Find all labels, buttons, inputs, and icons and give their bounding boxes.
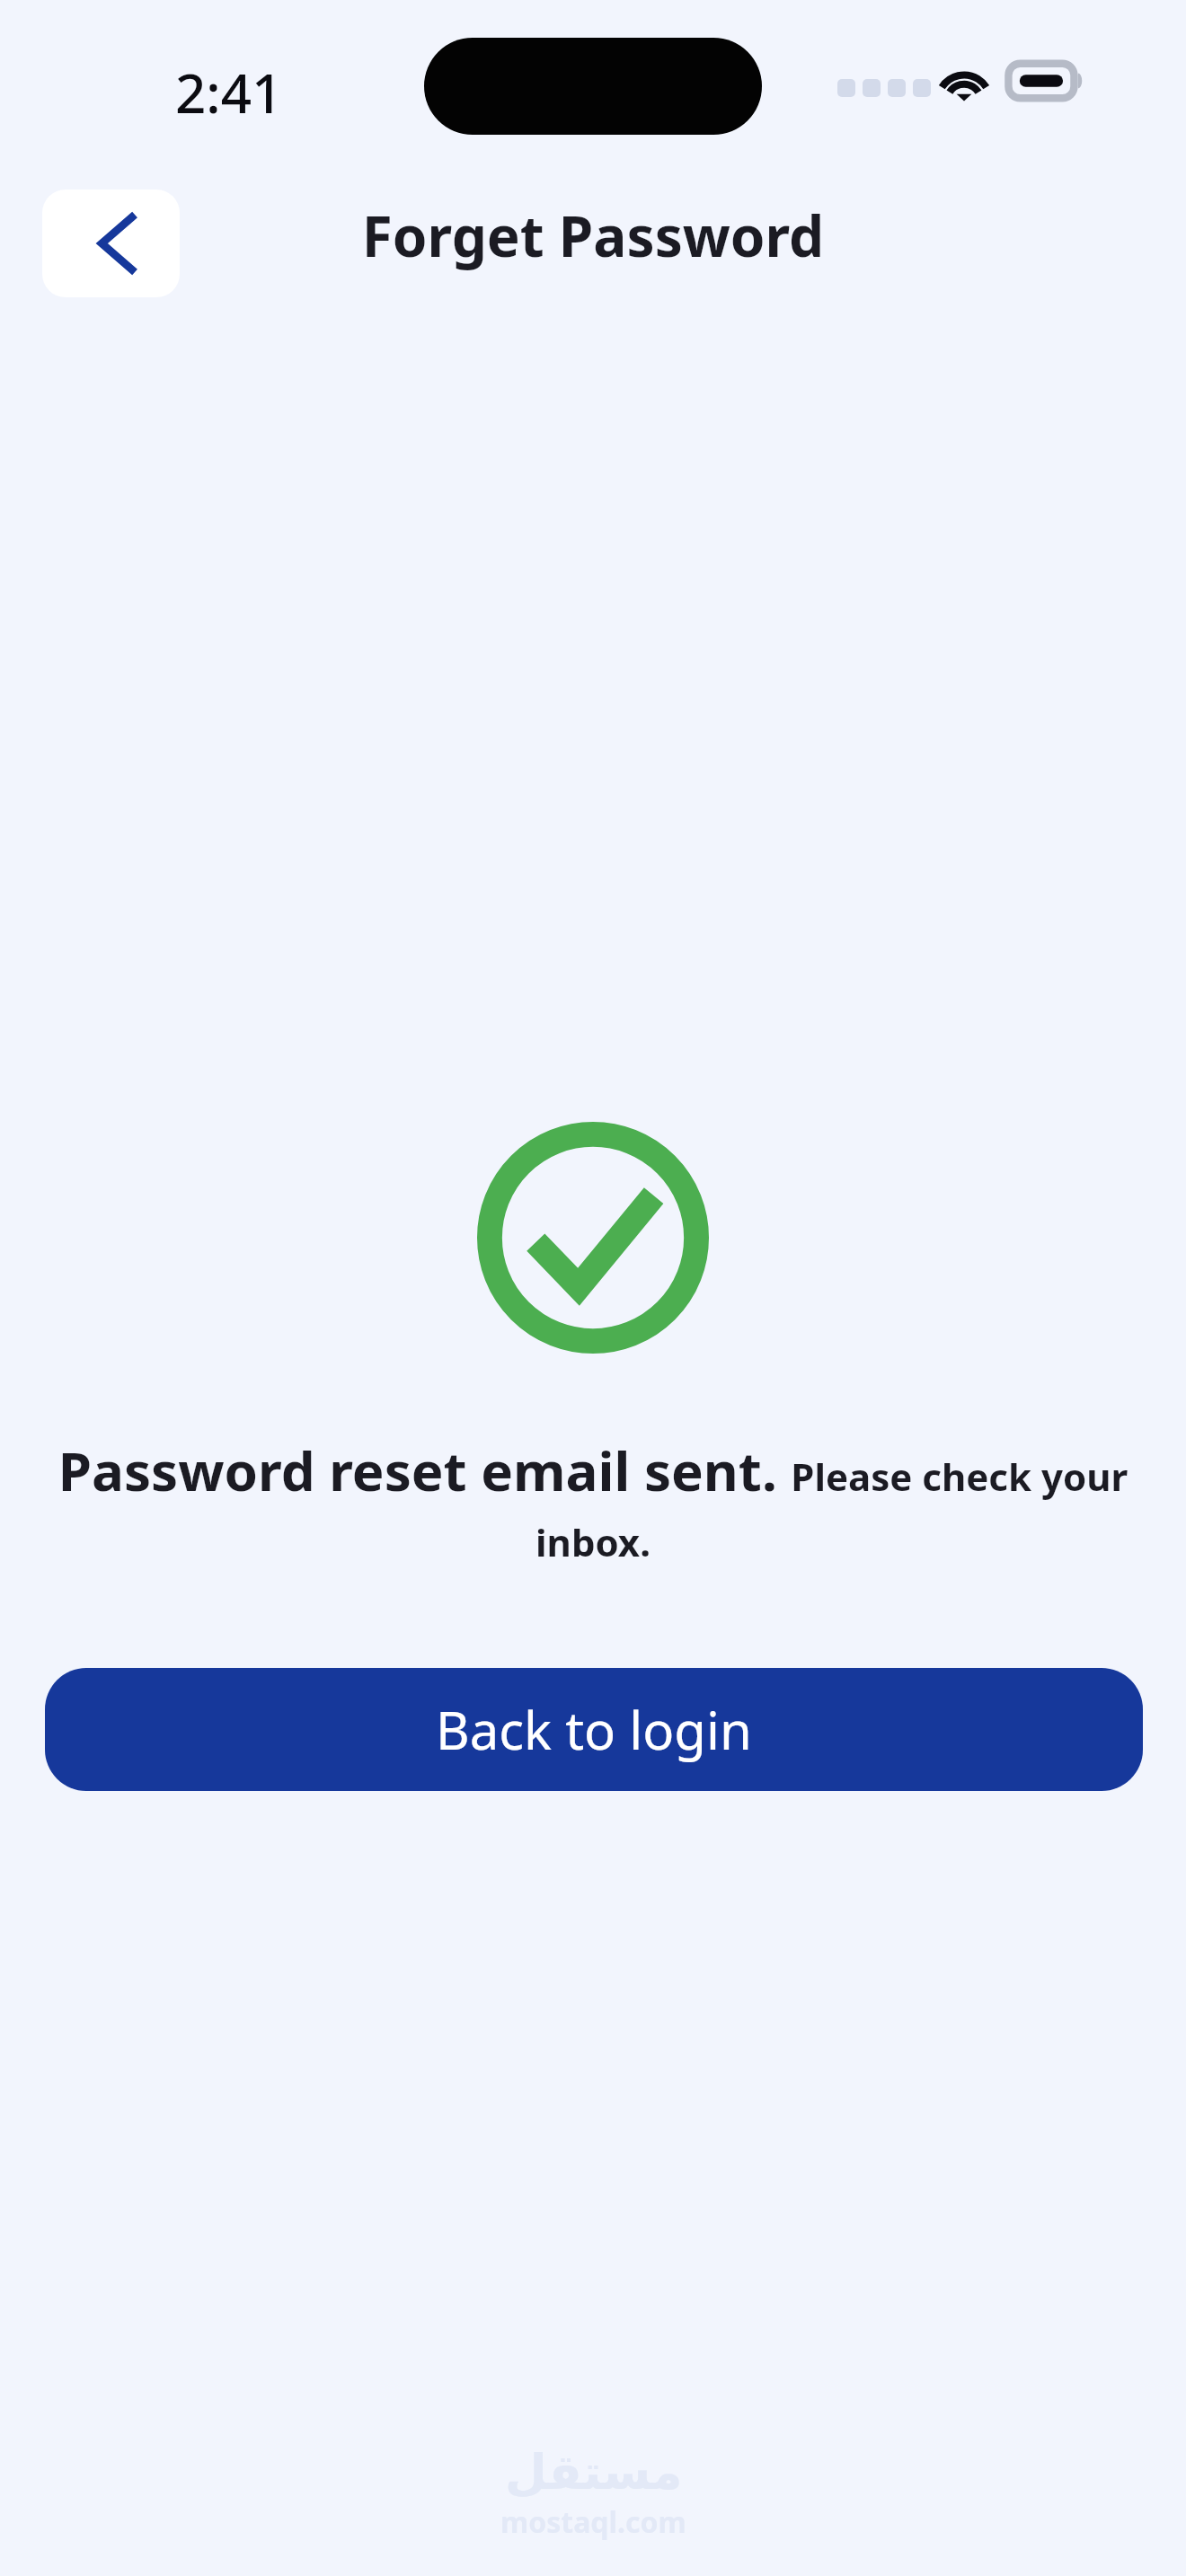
staticText: mostaql.com: [500, 2502, 686, 2542]
staticText: Back to login: [436, 1694, 752, 1765]
button[interactable]: Back to login: [45, 1668, 1143, 1791]
button[interactable]: Back: [42, 190, 180, 297]
staticText: Password reset email sent. Please check …: [43, 1434, 1143, 1567]
staticText: 2:41: [175, 56, 283, 129]
staticText: Forget Password: [0, 198, 1186, 273]
staticText: مستقل: [505, 2444, 683, 2501]
